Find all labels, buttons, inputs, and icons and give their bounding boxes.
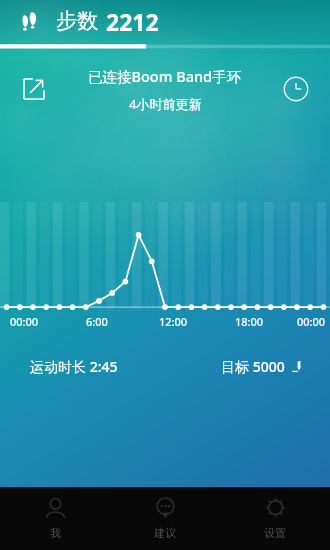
button[interactable]: Expand [0,50,330,128]
button[interactable]: 我 [0,487,110,550]
staticText: 运动时长 2:45 [30,357,118,376]
staticText: 4小时前更新 [129,95,202,113]
staticText: 步数 [56,8,98,34]
button[interactable]: History [280,73,312,105]
staticText: 00:00 [10,314,39,334]
staticText: 6:00 [86,314,108,334]
staticText: 我 [50,526,61,540]
staticText: 2212 [106,6,159,37]
staticText: 建议 [154,526,176,540]
staticText: 18:00 [235,314,264,334]
button[interactable]: 目标 5000 [221,357,304,376]
staticText: 12:00 [159,314,188,334]
staticText: 已连接Boom Band手环 [88,66,242,86]
button[interactable]: 设置 [220,487,330,550]
staticText: 00:00 [297,314,326,334]
button[interactable]: 建议 [110,487,220,550]
staticText: 目标 5000 [221,357,285,376]
staticText: 设置 [264,526,286,540]
button[interactable]: Expand [18,73,50,105]
